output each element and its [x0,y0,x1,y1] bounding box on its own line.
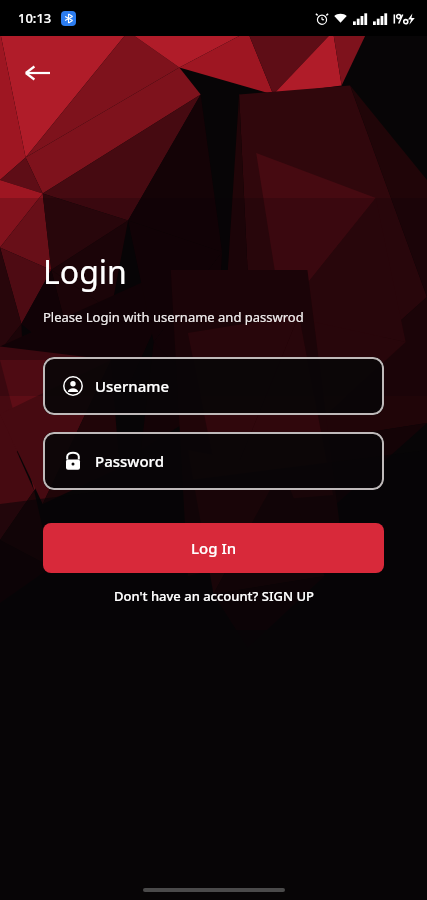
staticText: Username [95,376,170,396]
staticText: Log In [191,538,237,558]
button[interactable]: Back [14,50,60,96]
button[interactable]: Username [43,357,384,415]
staticText: Password [95,451,164,471]
button[interactable]: Password [43,432,384,490]
staticText: 10:13 [18,9,52,27]
staticText: Please Login with username and passwrod [43,308,304,326]
staticText: Login [43,250,127,294]
staticText: Don't have an account? SIGN UP [114,587,314,605]
button[interactable]: Don't have an account? SIGN UP [43,587,384,605]
button[interactable]: Log In [43,523,384,573]
